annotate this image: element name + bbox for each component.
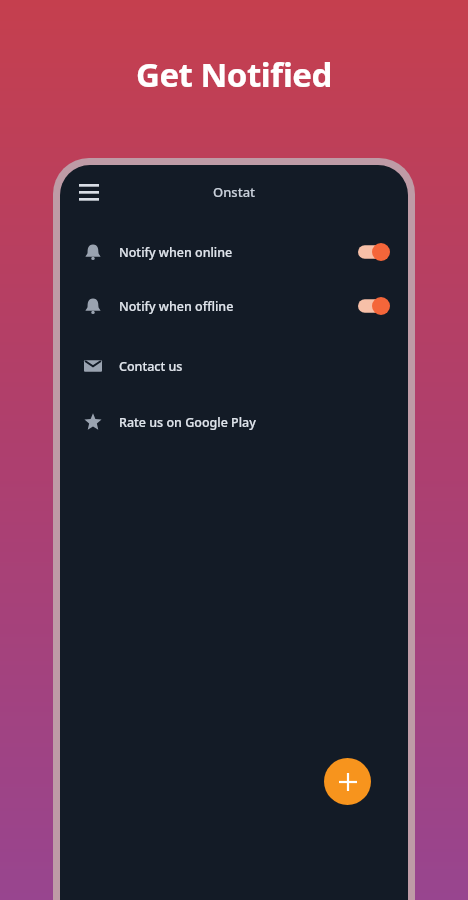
staticText: Contact us: [119, 358, 183, 375]
button[interactable]: Notify when offline: [60, 289, 408, 323]
button[interactable]: Toggle Notify when offline: [352, 291, 398, 321]
staticText: Notify when offline: [119, 298, 234, 315]
staticText: Get Notified: [136, 52, 332, 97]
staticText: Notify when online: [119, 244, 233, 261]
button[interactable]: Notify when online: [60, 235, 408, 269]
button[interactable]: Contact us: [60, 349, 408, 383]
staticText: Onstat: [213, 183, 256, 201]
button[interactable]: Open navigation menu: [72, 175, 106, 209]
button[interactable]: Add: [324, 758, 371, 805]
button[interactable]: Toggle Notify when online: [352, 237, 398, 267]
staticText: Rate us on Google Play: [119, 414, 256, 431]
button[interactable]: Rate us on Google Play: [60, 405, 408, 439]
